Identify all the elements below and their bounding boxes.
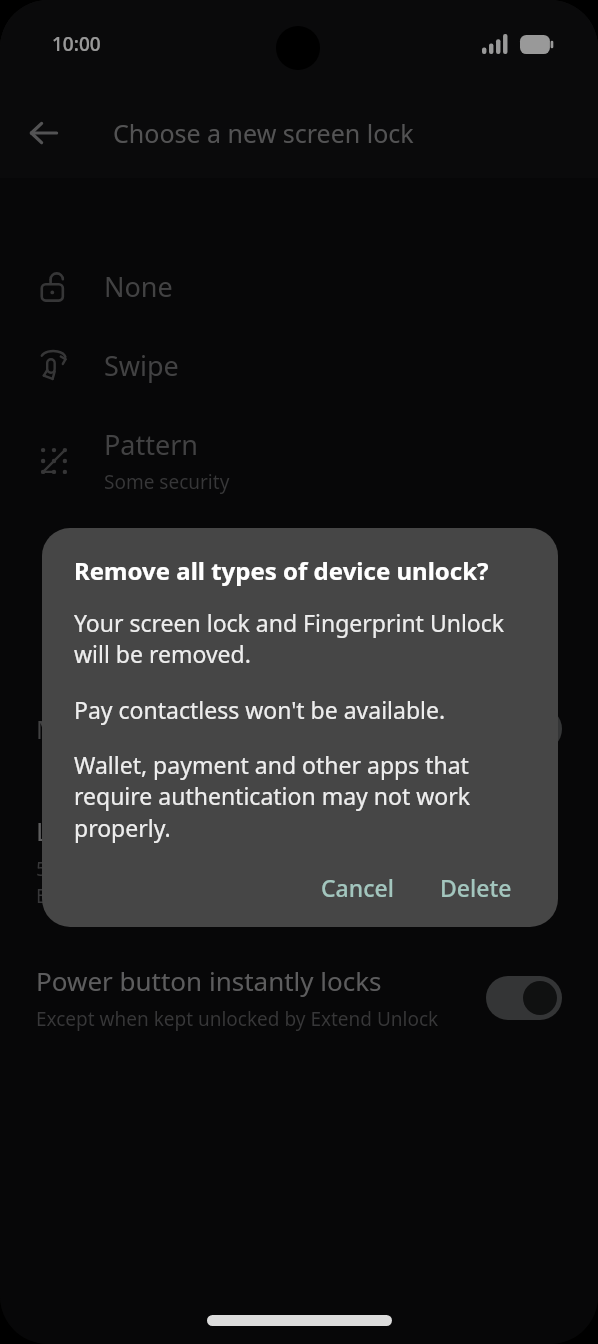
- button[interactable]: Power button instantly locks: [0, 963, 598, 1032]
- staticText: Remove all types of device unlock?: [74, 554, 489, 587]
- button[interactable]: Toggle setting: [486, 976, 562, 1020]
- button[interactable]: Make pattern visible: [0, 707, 598, 751]
- staticText: Except when kept unlocked by Extend Unlo…: [36, 1006, 439, 1032]
- button[interactable]: Toggle setting: [486, 707, 562, 751]
- button[interactable]: None: [0, 268, 598, 305]
- button[interactable]: Lock after screen timeout: [0, 813, 598, 909]
- staticText: Swipe: [104, 347, 179, 384]
- staticText: None: [104, 268, 173, 305]
- staticText: 5 seconds after timeout, except when kep…: [36, 856, 562, 909]
- button[interactable]: Cancel: [307, 864, 408, 911]
- staticText: Power button instantly locks: [36, 963, 382, 998]
- staticText: Choose a new screen lock: [113, 116, 414, 150]
- button[interactable]: Delete: [426, 864, 526, 911]
- staticText: Your screen lock and Fingerprint Unlock …: [74, 607, 526, 670]
- staticText: Pay contactless won't be available.: [74, 694, 446, 725]
- staticText: Make pattern visible: [36, 712, 274, 746]
- button[interactable]: Swipe: [0, 347, 598, 384]
- staticText: 10:00: [52, 31, 101, 57]
- staticText: Some security: [104, 469, 230, 495]
- staticText: Delete: [440, 872, 512, 903]
- button[interactable]: Pattern: [0, 426, 598, 495]
- button[interactable]: Back: [20, 109, 68, 157]
- staticText: Wallet, payment and other apps that requ…: [74, 749, 526, 844]
- staticText: Lock after screen timeout: [36, 813, 348, 848]
- staticText: Cancel: [321, 872, 394, 903]
- staticText: Pattern: [104, 426, 199, 463]
